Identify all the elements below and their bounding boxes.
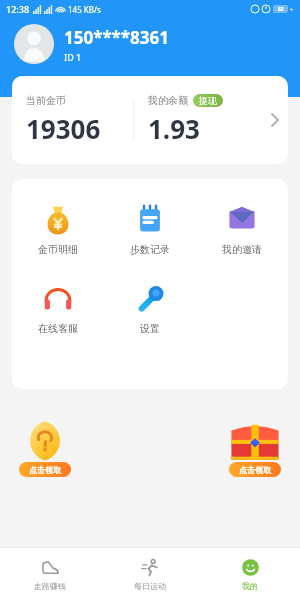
button[interactable]: 当前金币 xyxy=(12,76,288,164)
staticText: ID 1 xyxy=(64,51,82,63)
staticText: 82 xyxy=(278,6,284,13)
staticText: 在线客服 xyxy=(38,322,78,335)
other: 详情 xyxy=(262,105,288,135)
staticText: 点击领取 xyxy=(29,465,61,475)
button[interactable]: 点击领取宝箱 xyxy=(224,419,286,477)
staticText: 我的邀请 xyxy=(222,243,262,256)
button[interactable]: 设置 xyxy=(104,284,196,335)
button[interactable]: 金币明细 xyxy=(12,205,104,256)
staticText: 12:38 xyxy=(6,3,30,15)
button[interactable]: 提现 xyxy=(193,94,223,107)
staticText: 当前金币 xyxy=(26,94,66,107)
button[interactable]: 我的 xyxy=(200,548,300,600)
staticText: 19306 xyxy=(26,111,101,146)
staticText: 每日运动 xyxy=(134,581,166,591)
staticText: 点击领取 xyxy=(239,465,271,475)
button[interactable]: 在线客服 xyxy=(12,284,104,335)
staticText: 我的 xyxy=(242,581,258,591)
button[interactable]: 点击领取金蛋 xyxy=(14,419,76,477)
staticText: 150****8361 xyxy=(64,26,169,49)
staticText: 走路赚钱 xyxy=(34,581,66,591)
button[interactable]: 步数记录 xyxy=(104,205,196,256)
button[interactable]: 每日运动 xyxy=(100,548,200,600)
staticText: 设置 xyxy=(140,322,160,335)
staticText: 145 KB/s xyxy=(68,4,101,15)
button[interactable]: 150****8361 xyxy=(14,24,300,64)
staticText: 1.93 xyxy=(148,111,200,146)
staticText: 我的余额 xyxy=(148,94,188,107)
button[interactable]: 我的邀请 xyxy=(196,205,288,256)
staticText: 提现 xyxy=(199,95,217,106)
staticText: 步数记录 xyxy=(130,243,170,256)
button[interactable]: 走路赚钱 xyxy=(0,548,100,600)
staticText: 金币明细 xyxy=(38,243,78,256)
